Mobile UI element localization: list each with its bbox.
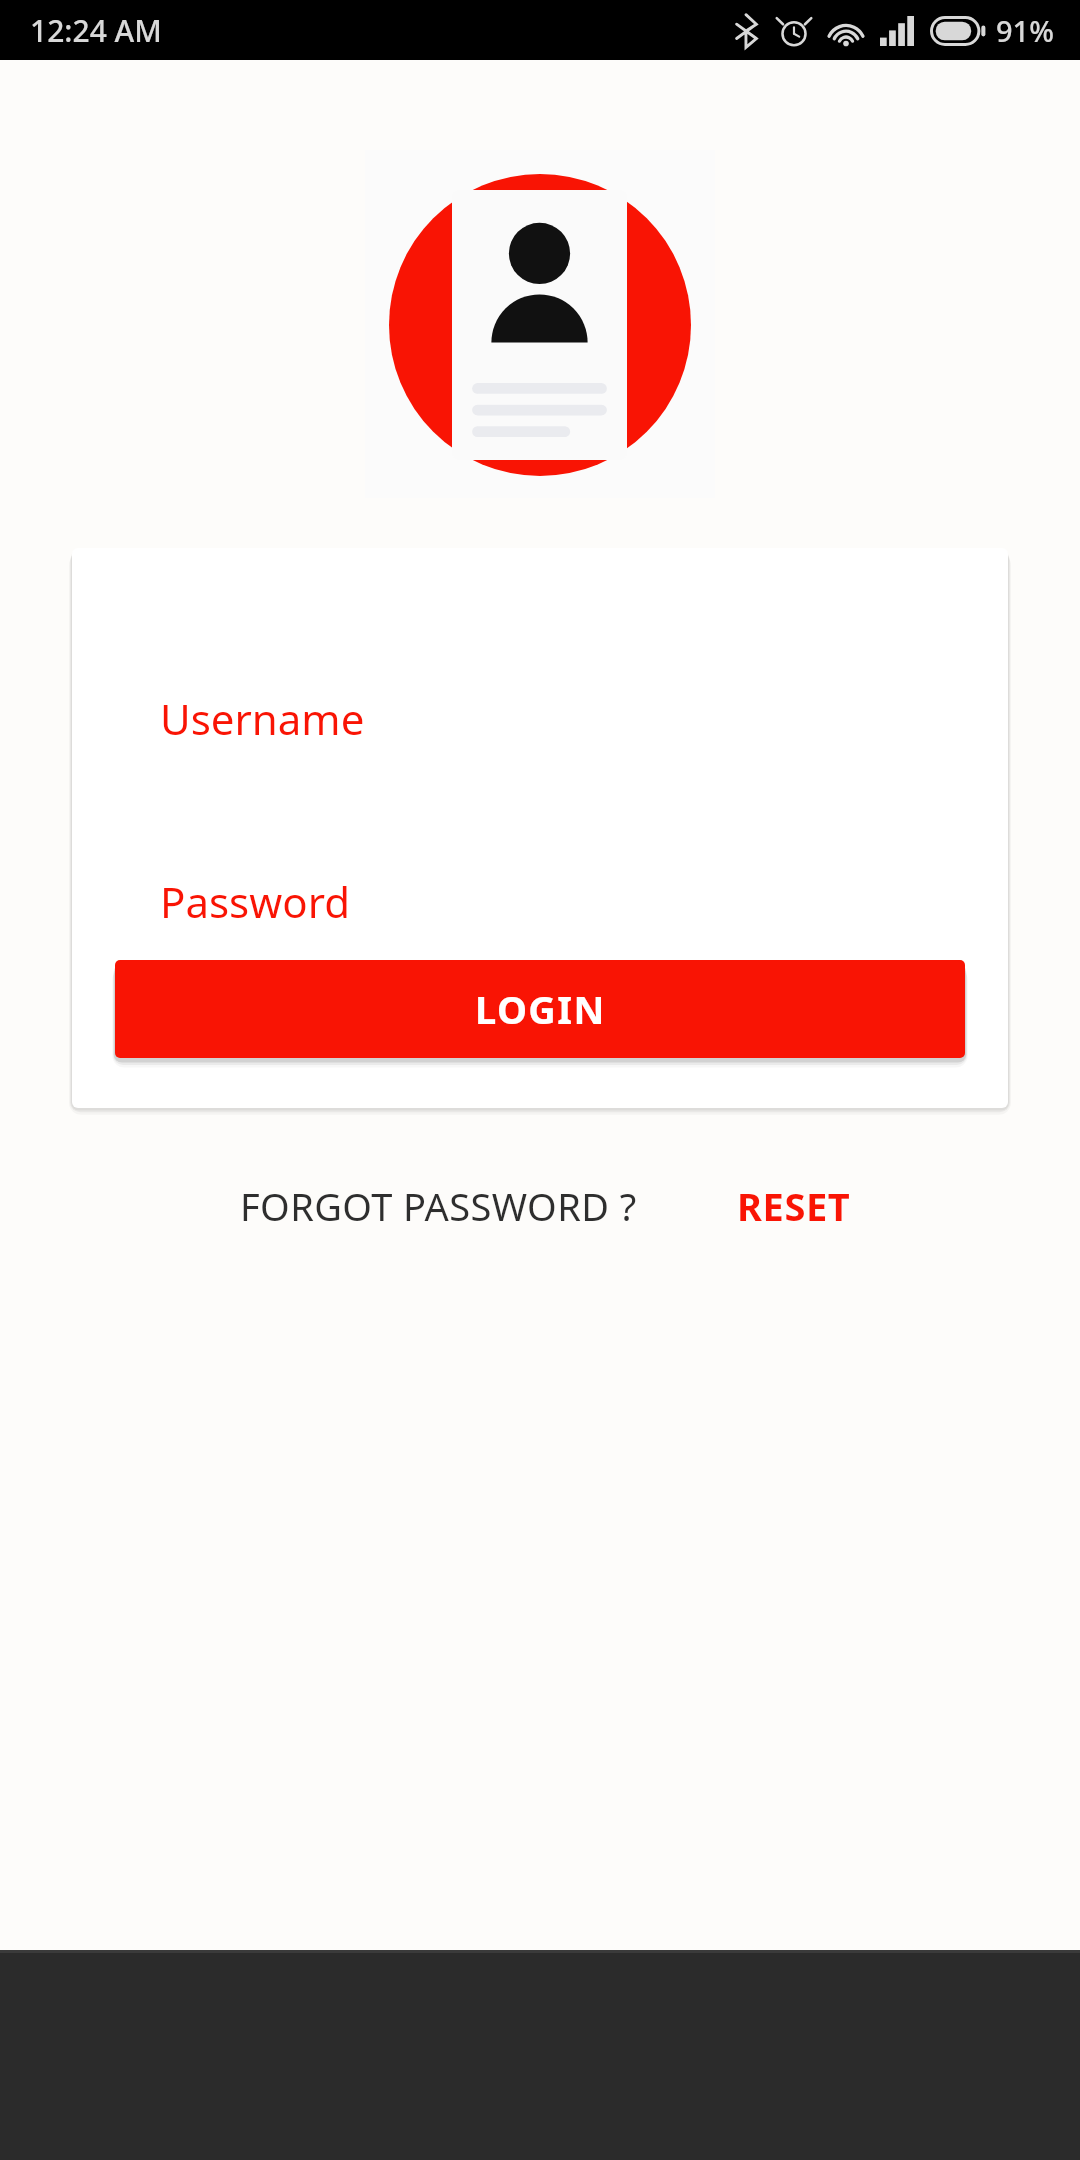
staticText: Username bbox=[160, 690, 365, 747]
staticText: 91% bbox=[996, 11, 1054, 50]
staticText: FORGOT PASSWORD ? bbox=[240, 1180, 637, 1232]
staticText: 12:24 AM bbox=[30, 10, 162, 51]
button[interactable]: LOGIN bbox=[115, 960, 965, 1058]
staticText: Password bbox=[160, 873, 350, 930]
staticText: RESET bbox=[737, 1180, 851, 1232]
button[interactable]: RESET bbox=[729, 1170, 859, 1242]
staticText: LOGIN bbox=[475, 983, 606, 1035]
button[interactable]: FORGOT PASSWORD ? bbox=[232, 1170, 645, 1242]
other: App logo bbox=[365, 150, 715, 498]
